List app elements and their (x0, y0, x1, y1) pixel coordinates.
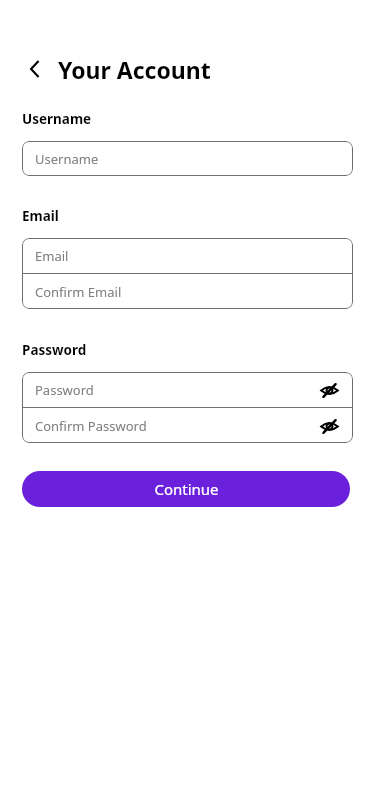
staticText: Continue (154, 479, 219, 499)
button[interactable]: Back (18, 52, 52, 86)
button[interactable]: Confirm Email (22, 274, 353, 309)
button[interactable]: Password (22, 372, 353, 407)
button[interactable]: Username (22, 141, 353, 176)
staticText: Your Account (58, 54, 211, 85)
button[interactable]: Confirm Password (22, 408, 353, 443)
staticText: Username (22, 110, 92, 128)
staticText: Confirm Password (35, 417, 318, 435)
staticText: Email (35, 247, 340, 265)
staticText: Email (22, 207, 59, 225)
staticText: Password (35, 381, 318, 399)
button[interactable]: Show password (318, 415, 340, 437)
staticText: Password (22, 341, 87, 359)
button[interactable]: Show password (318, 379, 340, 401)
button[interactable]: Continue (22, 471, 350, 507)
staticText: Confirm Email (35, 283, 340, 301)
button[interactable]: Email (22, 238, 353, 273)
staticText: Username (35, 150, 340, 168)
